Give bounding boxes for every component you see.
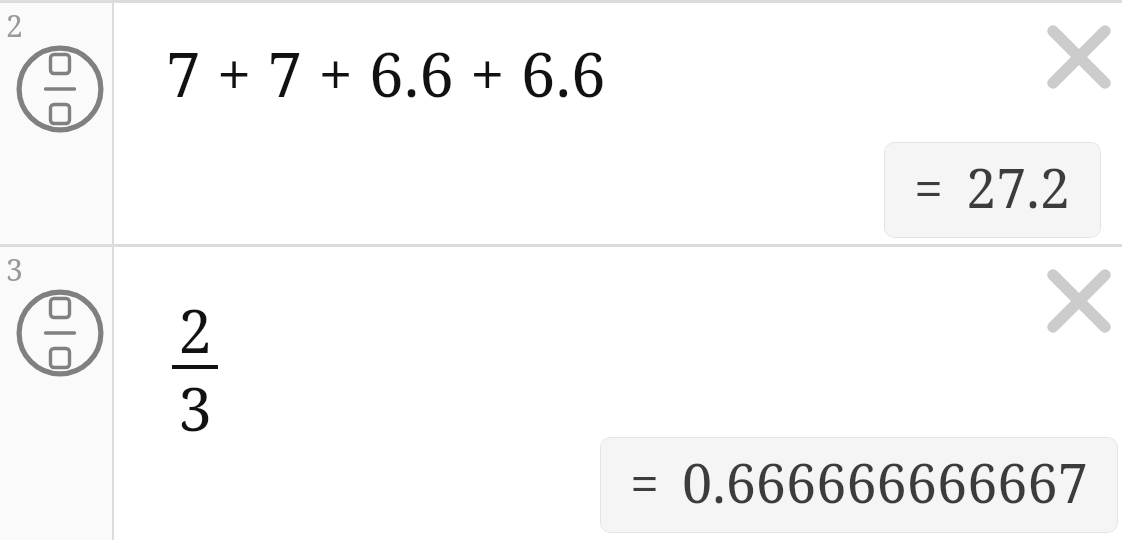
staticText: 27.2 (966, 150, 1071, 224)
staticText: 3 (6, 249, 23, 290)
button[interactable]: = (600, 437, 1118, 533)
button[interactable]: Delete expression 3 (1050, 272, 1108, 330)
staticText: 0.666666666667 (682, 445, 1088, 519)
staticText: = (914, 152, 944, 223)
staticText: 3 (178, 367, 212, 449)
button[interactable]: = (884, 142, 1101, 238)
button[interactable]: Fraction expression type (16, 289, 104, 377)
staticText: 2 (6, 5, 23, 46)
button[interactable]: 7 + 7 + 6.6 + 6.6 (114, 3, 1122, 244)
button[interactable]: Delete expression 2 (1050, 28, 1108, 86)
staticText: = (630, 447, 660, 518)
staticText: 7 + 7 + 6.6 + 6.6 (166, 31, 606, 115)
button[interactable]: 2 (114, 247, 1122, 540)
staticText: 2 (178, 289, 212, 371)
button[interactable]: Fraction expression type (16, 45, 104, 133)
